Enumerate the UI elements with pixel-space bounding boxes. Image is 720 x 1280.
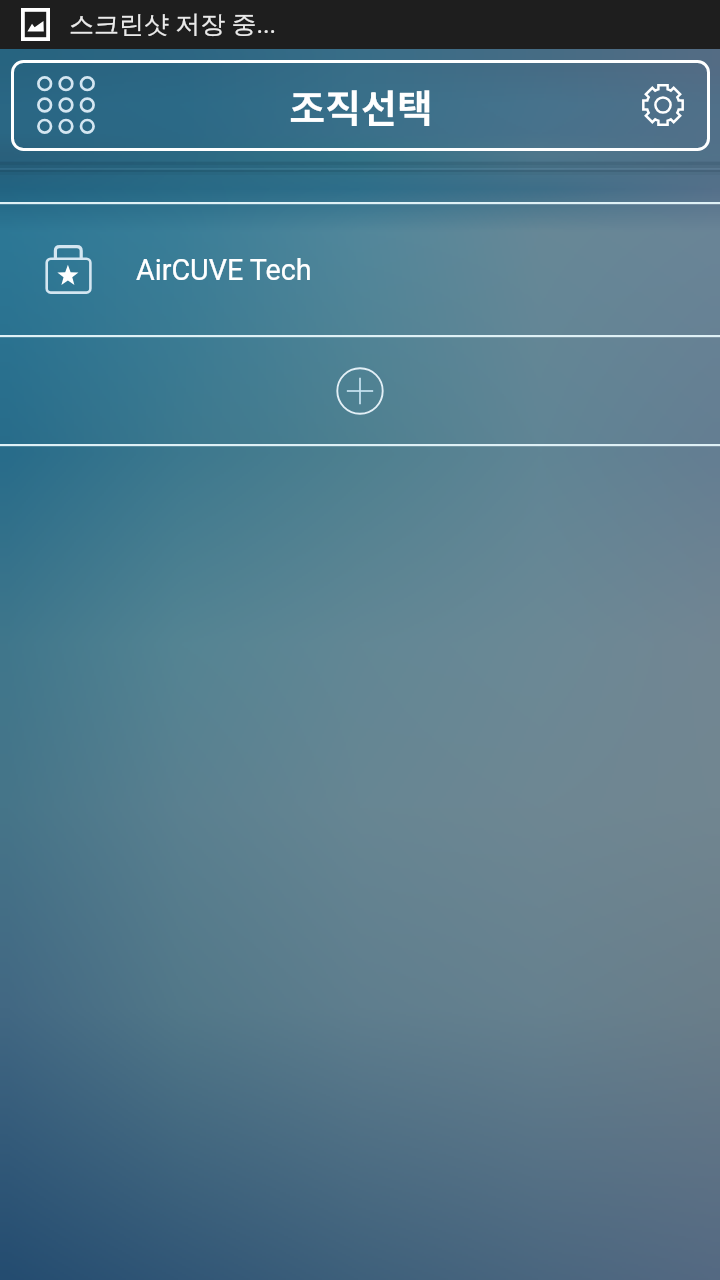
- staticText: 조직선택: [289, 78, 433, 134]
- button[interactable]: Settings: [600, 60, 710, 151]
- staticText: AirCUVE Tech: [136, 253, 312, 287]
- button[interactable]: Apps: [11, 60, 121, 151]
- staticText: 스크린샷 저장 중...: [69, 9, 277, 40]
- button[interactable]: AirCUVE Tech: [0, 205, 720, 335]
- button[interactable]: Add organization: [0, 338, 720, 444]
